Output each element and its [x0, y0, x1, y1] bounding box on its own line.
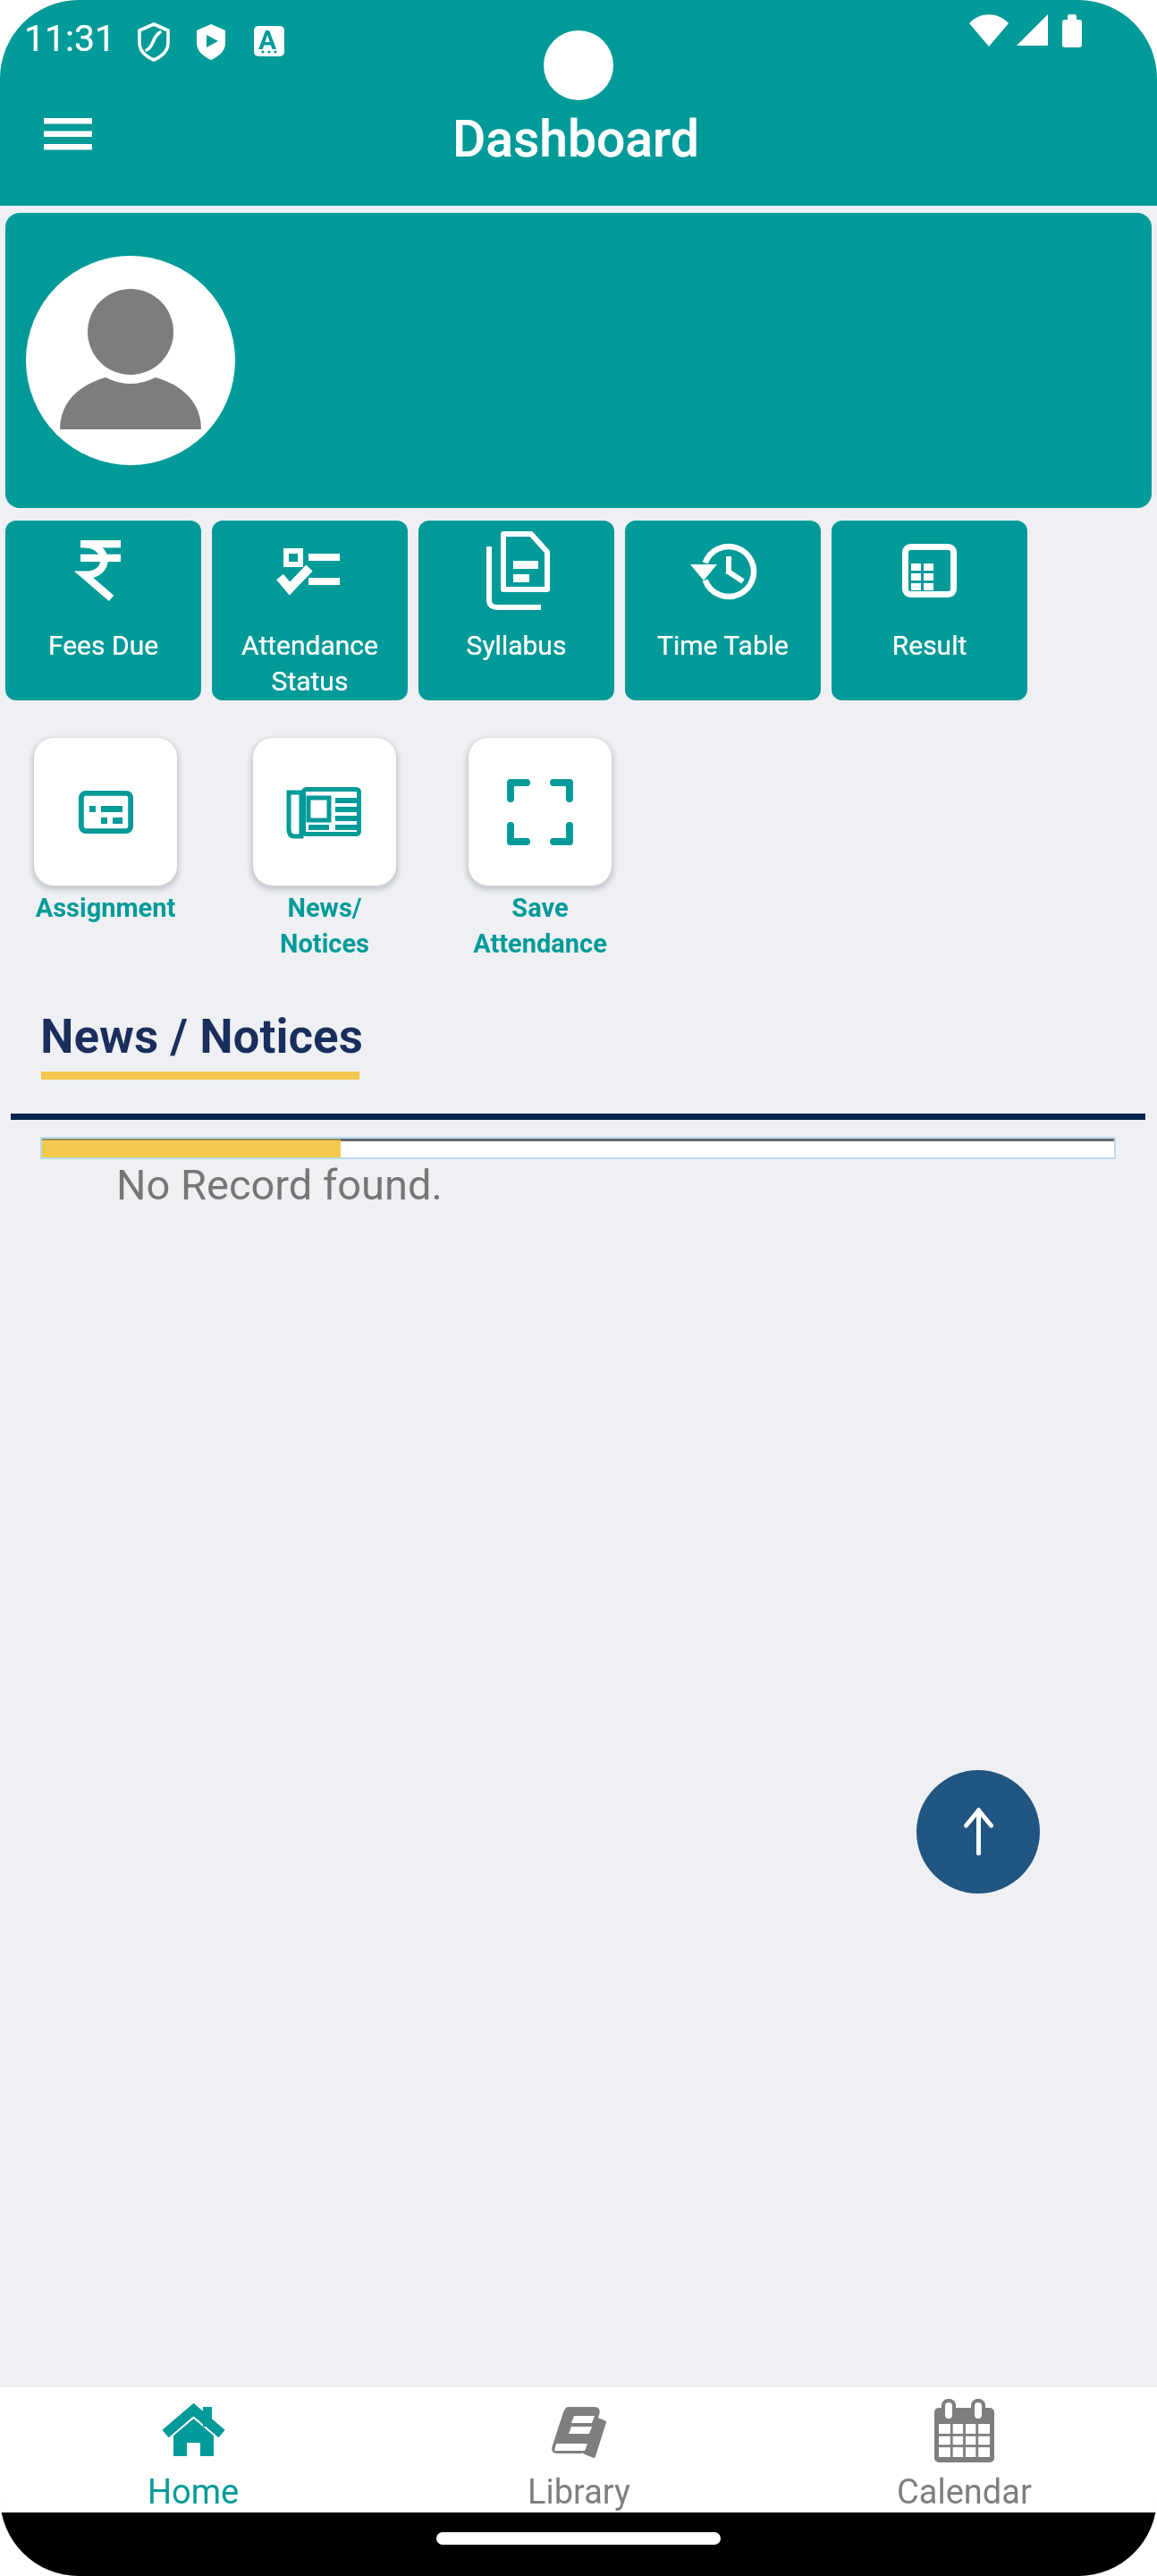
staticText: A — [258, 24, 277, 55]
staticText: Library — [528, 2472, 631, 2512]
staticText: News/ Notices — [213, 893, 436, 960]
button[interactable] — [34, 738, 177, 885]
staticText: Result — [832, 630, 1027, 661]
staticText: Time Table — [625, 630, 821, 661]
button[interactable]: Attendance Status — [212, 521, 408, 700]
staticText: No Record found. — [116, 1160, 443, 1209]
staticText: Save Attendance — [428, 893, 652, 960]
staticText: Home — [148, 2472, 240, 2512]
staticText: Fees Due — [5, 630, 201, 661]
button[interactable]: Result — [832, 521, 1027, 700]
button[interactable]: Fees Due — [5, 521, 201, 700]
button[interactable]: Calendar — [772, 2387, 1157, 2512]
button[interactable] — [253, 738, 396, 885]
staticText: Calendar — [897, 2472, 1032, 2512]
staticText: 11:31 — [24, 17, 116, 60]
staticText: Dashboard — [452, 109, 699, 169]
button[interactable] — [469, 738, 612, 885]
staticText: Attendance Status — [212, 630, 408, 698]
button[interactable]: Syllabus — [418, 521, 614, 700]
button[interactable]: Scroll to top — [916, 1770, 1040, 1894]
staticText: Assignment — [0, 893, 217, 923]
button[interactable]: Time Table — [625, 521, 821, 700]
button[interactable]: Open navigation menu — [13, 89, 122, 179]
button[interactable] — [5, 213, 1152, 508]
staticText: Syllabus — [418, 630, 614, 661]
button[interactable]: Home — [0, 2387, 386, 2512]
staticText: News / Notices — [40, 1009, 363, 1064]
button[interactable]: Library — [386, 2387, 772, 2512]
